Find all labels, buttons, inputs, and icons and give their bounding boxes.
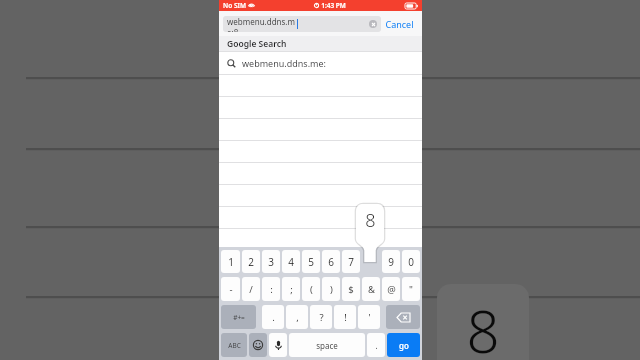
- button[interactable]: 2: [242, 250, 260, 273]
- staticText: 5: [308, 255, 314, 269]
- staticText: 3: [268, 255, 274, 269]
- staticText: 4: [288, 255, 294, 269]
- staticText: #+=: [233, 313, 245, 322]
- button[interactable]: ,: [286, 305, 308, 329]
- staticText: No SIM: [223, 1, 246, 10]
- staticText: Cancel: [385, 18, 414, 30]
- staticText: webmenu.ddns.me:8: [227, 16, 297, 32]
- staticText: 8: [466, 291, 500, 360]
- staticText: ": [409, 283, 413, 296]
- button[interactable]: Emoji: [249, 333, 267, 357]
- staticText: ,: [296, 311, 299, 324]
- staticText: $: [348, 283, 354, 296]
- other: Search: [227, 59, 236, 68]
- button[interactable]: -: [221, 277, 240, 301]
- staticText: :: [270, 283, 273, 296]
- staticText: Google Search: [227, 38, 287, 50]
- button[interactable]: [219, 207, 422, 228]
- button[interactable]: ABC: [221, 333, 247, 357]
- staticText: ABC: [228, 341, 241, 350]
- button[interactable]: ': [358, 305, 380, 329]
- staticText: &: [368, 283, 375, 296]
- button[interactable]: go: [387, 333, 420, 357]
- staticText: ': [368, 311, 371, 324]
- button[interactable]: .: [262, 305, 284, 329]
- button[interactable]: 7: [342, 250, 360, 273]
- button[interactable]: &: [362, 277, 380, 301]
- button[interactable]: 1: [221, 250, 240, 273]
- staticText: 0: [408, 255, 414, 269]
- staticText: /: [249, 283, 253, 296]
- button[interactable]: 5: [302, 250, 320, 273]
- staticText: ): [330, 283, 333, 296]
- staticText: .: [272, 311, 275, 324]
- staticText: 1: [228, 255, 234, 269]
- button[interactable]: ;: [282, 277, 300, 301]
- button[interactable]: #+=: [221, 305, 256, 329]
- button[interactable]: [362, 250, 380, 273]
- button[interactable]: $: [342, 277, 360, 301]
- button[interactable]: /: [242, 277, 260, 301]
- staticText: -: [229, 283, 233, 296]
- staticText: ;: [290, 283, 293, 296]
- button[interactable]: 6: [322, 250, 340, 273]
- staticText: 9: [388, 255, 394, 269]
- staticText: go: [399, 340, 409, 351]
- staticText: space: [316, 340, 338, 351]
- staticText: 7: [348, 255, 354, 269]
- button[interactable]: 4: [282, 250, 300, 273]
- button[interactable]: @: [382, 277, 400, 301]
- button[interactable]: Backspace: [386, 305, 420, 329]
- staticText: 1:43 PM: [321, 1, 346, 10]
- staticText: ?: [319, 311, 324, 324]
- button[interactable]: webmenu.ddns.me:8: [223, 16, 381, 32]
- button[interactable]: space: [289, 333, 365, 357]
- button[interactable]: Clear text: [369, 20, 377, 28]
- button[interactable]: ": [402, 277, 420, 301]
- button[interactable]: .: [367, 333, 385, 357]
- button[interactable]: !: [334, 305, 356, 329]
- button[interactable]: Search: [219, 52, 422, 74]
- staticText: .: [375, 340, 378, 351]
- button[interactable]: [219, 229, 422, 247]
- button[interactable]: :: [262, 277, 280, 301]
- button[interactable]: 9: [382, 250, 400, 273]
- button[interactable]: 3: [262, 250, 280, 273]
- staticText: !: [344, 311, 347, 324]
- staticText: (: [310, 283, 313, 296]
- button[interactable]: ?: [310, 305, 332, 329]
- staticText: 2: [248, 255, 254, 269]
- staticText: 6: [328, 255, 334, 269]
- staticText: 8: [365, 208, 376, 233]
- button[interactable]: Cancel: [381, 14, 418, 34]
- staticText: @: [387, 283, 396, 296]
- button[interactable]: (: [302, 277, 320, 301]
- button[interactable]: ): [322, 277, 340, 301]
- staticText: webmenu.ddns.me:: [242, 57, 326, 69]
- button[interactable]: Dictation: [269, 333, 287, 357]
- button[interactable]: 0: [402, 250, 420, 273]
